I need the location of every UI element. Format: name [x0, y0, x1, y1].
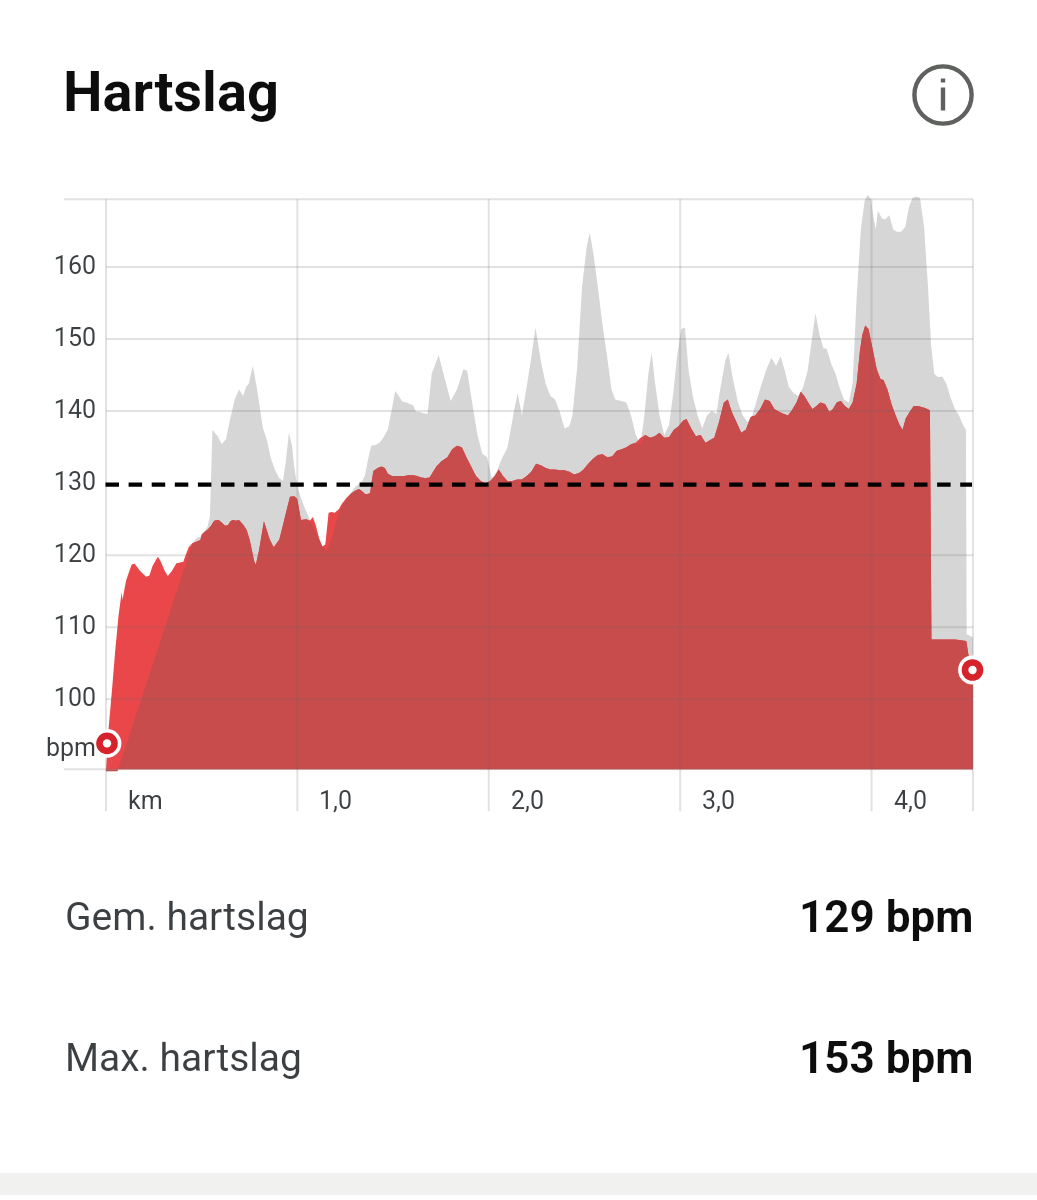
staticText: 110 — [53, 611, 96, 640]
staticText: 129 bpm — [799, 891, 974, 943]
staticText: 1,0 — [319, 786, 353, 815]
staticText: Gem. hartslag — [65, 894, 309, 940]
staticText: 153 bpm — [799, 1032, 974, 1084]
staticText: Hartslag — [63, 59, 279, 125]
button[interactable]: Max. hartslag — [0, 1013, 1037, 1103]
staticText: 4,0 — [894, 786, 928, 815]
staticText: km — [128, 786, 163, 815]
staticText: 3,0 — [702, 786, 736, 815]
staticText: 140 — [53, 395, 96, 424]
staticText: bpm — [46, 733, 96, 762]
staticText: 130 — [53, 467, 96, 496]
staticText: 120 — [53, 539, 96, 568]
button[interactable]: Info — [905, 57, 981, 133]
staticText: 2,0 — [511, 786, 545, 815]
staticText: 150 — [53, 323, 96, 352]
staticText: 100 — [53, 683, 96, 712]
staticText: 160 — [53, 251, 96, 280]
staticText: Max. hartslag — [65, 1035, 302, 1081]
button[interactable]: Gem. hartslag — [0, 872, 1037, 962]
